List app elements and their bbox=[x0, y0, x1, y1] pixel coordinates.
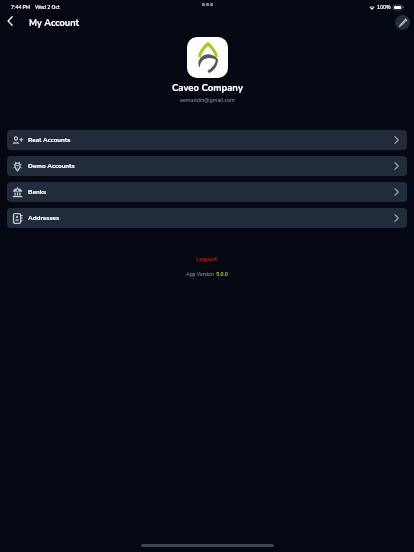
staticText: Banks bbox=[28, 188, 47, 197]
staticText: My Account bbox=[29, 17, 80, 30]
staticText: Logout bbox=[196, 254, 218, 263]
button[interactable]: Addresses bbox=[7, 208, 407, 228]
staticText: Real Accounts bbox=[28, 136, 71, 145]
staticText: aemaddin@gmail.com bbox=[180, 96, 235, 104]
staticText: Caveo Company bbox=[172, 81, 243, 94]
button[interactable]: Logout bbox=[186, 252, 228, 265]
button[interactable]: Demo Accounts bbox=[7, 156, 407, 176]
button[interactable]: Banks bbox=[7, 182, 407, 202]
staticText: 7:44 PM bbox=[11, 4, 31, 11]
staticText: Wed 2 Oct bbox=[35, 4, 60, 11]
button[interactable]: Edit profile bbox=[395, 15, 410, 30]
staticText: Addresses bbox=[28, 214, 60, 223]
staticText: Demo Accounts bbox=[28, 162, 75, 171]
button[interactable]: Back bbox=[1, 12, 18, 29]
staticText: App Version 5.0.0 bbox=[186, 271, 228, 278]
button[interactable]: Real Accounts bbox=[7, 130, 407, 150]
staticText: 100% bbox=[377, 4, 391, 11]
